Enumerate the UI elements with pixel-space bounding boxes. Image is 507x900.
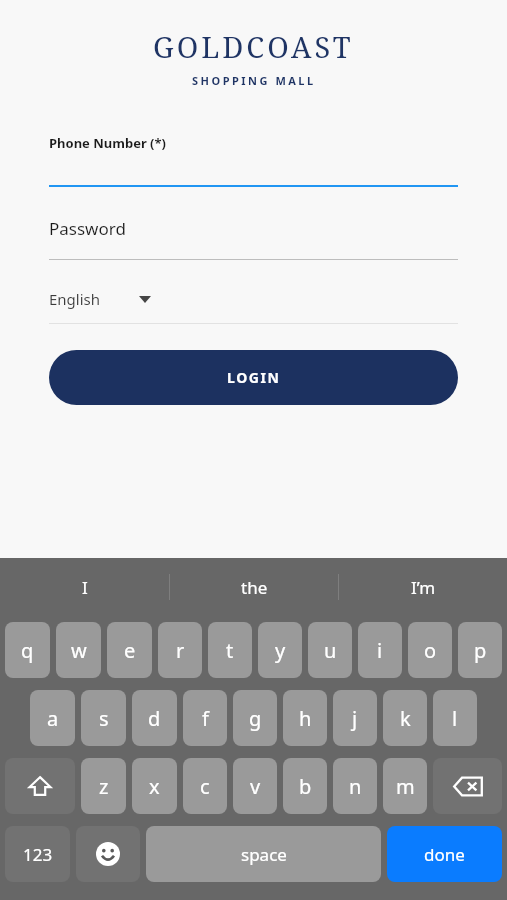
button[interactable]: LOGIN: [49, 350, 458, 405]
button[interactable]: j: [333, 690, 377, 746]
staticText: b: [299, 773, 312, 800]
button[interactable]: 123: [5, 826, 70, 882]
button[interactable]: Backspace: [433, 758, 502, 814]
button[interactable]: p: [458, 622, 502, 678]
staticText: LOGIN: [227, 368, 281, 387]
button[interactable]: r: [158, 622, 202, 678]
staticText: s: [99, 705, 109, 732]
button[interactable]: g: [233, 690, 277, 746]
staticText: z: [99, 773, 109, 800]
button[interactable]: Shift: [5, 758, 75, 814]
button[interactable]: Emoji: [76, 826, 140, 882]
staticText: i: [377, 637, 383, 664]
staticText: English: [49, 289, 101, 309]
button[interactable]: o: [408, 622, 452, 678]
staticText: m: [396, 773, 415, 800]
button[interactable]: y: [258, 622, 302, 678]
staticText: o: [424, 637, 437, 664]
button[interactable]: c: [183, 758, 227, 814]
staticText: Password: [49, 217, 126, 240]
staticText: y: [275, 637, 286, 664]
button[interactable]: x: [132, 758, 177, 814]
button[interactable]: q: [5, 622, 50, 678]
button[interactable]: t: [208, 622, 252, 678]
staticText: r: [176, 637, 185, 664]
button[interactable]: m: [383, 758, 427, 814]
staticText: c: [200, 773, 210, 800]
button[interactable]: I’m: [339, 558, 507, 616]
staticText: t: [226, 637, 234, 664]
staticText: w: [71, 637, 87, 664]
staticText: GOLDCOAST: [153, 27, 354, 66]
staticText: n: [349, 773, 362, 800]
button[interactable]: e: [107, 622, 152, 678]
staticText: the: [241, 576, 268, 599]
staticText: p: [474, 637, 487, 664]
staticText: d: [148, 705, 161, 732]
staticText: space: [241, 843, 287, 866]
button[interactable]: u: [308, 622, 352, 678]
button[interactable]: space: [146, 826, 381, 882]
button[interactable]: b: [283, 758, 327, 814]
button[interactable]: a: [30, 690, 75, 746]
staticText: l: [452, 705, 458, 732]
staticText: SHOPPING MALL: [192, 73, 316, 88]
staticText: j: [352, 705, 358, 732]
staticText: done: [424, 843, 465, 866]
button[interactable]: s: [81, 690, 126, 746]
staticText: a: [47, 705, 59, 732]
staticText: u: [324, 637, 337, 664]
staticText: 123: [23, 843, 53, 866]
button[interactable]: d: [132, 690, 177, 746]
button[interactable]: English: [49, 289, 458, 324]
staticText: q: [21, 637, 34, 664]
staticText: v: [250, 773, 261, 800]
staticText: I’m: [411, 576, 436, 599]
button[interactable]: the: [170, 558, 338, 616]
button[interactable]: h: [283, 690, 327, 746]
staticText: x: [149, 773, 160, 800]
button[interactable]: l: [433, 690, 477, 746]
staticText: k: [400, 705, 411, 732]
staticText: I: [82, 576, 88, 599]
button[interactable]: Phone Number (*): [49, 134, 458, 187]
button[interactable]: I: [0, 558, 169, 616]
button[interactable]: z: [81, 758, 126, 814]
button[interactable]: Password: [49, 217, 458, 260]
button[interactable]: w: [56, 622, 101, 678]
button[interactable]: n: [333, 758, 377, 814]
staticText: Phone Number (*): [49, 134, 166, 152]
button[interactable]: i: [358, 622, 402, 678]
staticText: g: [249, 705, 262, 732]
button[interactable]: done: [387, 826, 502, 882]
button[interactable]: k: [383, 690, 427, 746]
staticText: e: [124, 637, 136, 664]
staticText: f: [202, 705, 209, 732]
staticText: h: [299, 705, 312, 732]
button[interactable]: f: [183, 690, 227, 746]
button[interactable]: v: [233, 758, 277, 814]
